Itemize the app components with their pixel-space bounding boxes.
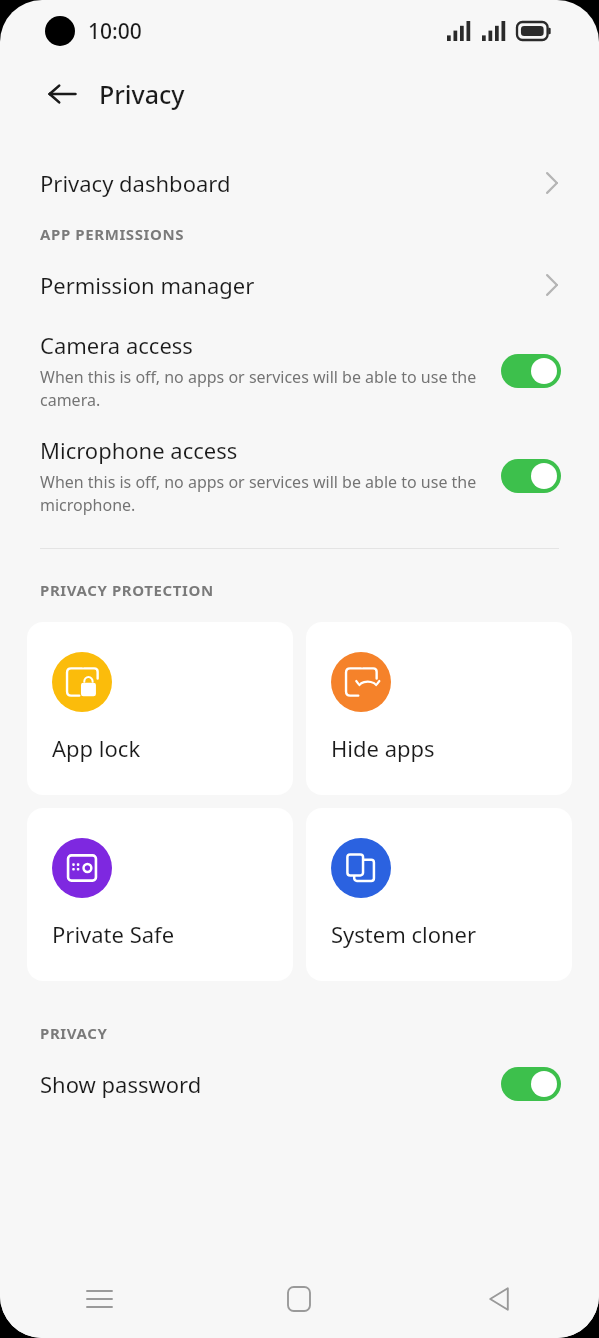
staticText: When this is off, no apps or services wi… bbox=[40, 366, 487, 411]
button[interactable]: Toggle bbox=[501, 1067, 561, 1101]
staticText: App lock bbox=[52, 733, 141, 763]
button[interactable]: Hide apps bbox=[306, 622, 572, 795]
staticText: When this is off, no apps or services wi… bbox=[40, 471, 487, 516]
staticText: Private Safe bbox=[52, 919, 175, 949]
button[interactable]: Microphone access bbox=[0, 435, 599, 516]
button[interactable]: Show password bbox=[0, 1067, 599, 1101]
button[interactable]: System cloner bbox=[306, 808, 572, 981]
button[interactable]: Permission manager bbox=[0, 268, 599, 302]
staticText: Hide apps bbox=[331, 733, 435, 763]
staticText: Show password bbox=[40, 1069, 487, 1099]
staticText: Privacy bbox=[99, 77, 185, 111]
staticText: Microphone access bbox=[40, 435, 238, 465]
button[interactable]: Toggle bbox=[501, 459, 561, 493]
staticText: System cloner bbox=[331, 919, 477, 949]
button[interactable]: Toggle bbox=[501, 354, 561, 388]
staticText: APP PERMISSIONS bbox=[40, 224, 185, 244]
button[interactable]: App lock bbox=[27, 622, 293, 795]
button[interactable]: Back bbox=[399, 1260, 599, 1338]
button[interactable]: Home bbox=[199, 1260, 399, 1338]
staticText: PRIVACY bbox=[40, 1023, 108, 1043]
staticText: PRIVACY PROTECTION bbox=[40, 580, 214, 600]
button[interactable]: Privacy dashboard bbox=[0, 166, 599, 200]
button[interactable]: Camera access bbox=[0, 330, 599, 411]
staticText: Camera access bbox=[40, 330, 193, 360]
button[interactable]: Back bbox=[40, 72, 84, 116]
staticText: Permission manager bbox=[40, 270, 545, 300]
button[interactable]: Recent apps bbox=[0, 1260, 199, 1338]
staticText: 10:00 bbox=[88, 17, 142, 46]
staticText: Privacy dashboard bbox=[40, 168, 545, 198]
button[interactable]: Private Safe bbox=[27, 808, 293, 981]
